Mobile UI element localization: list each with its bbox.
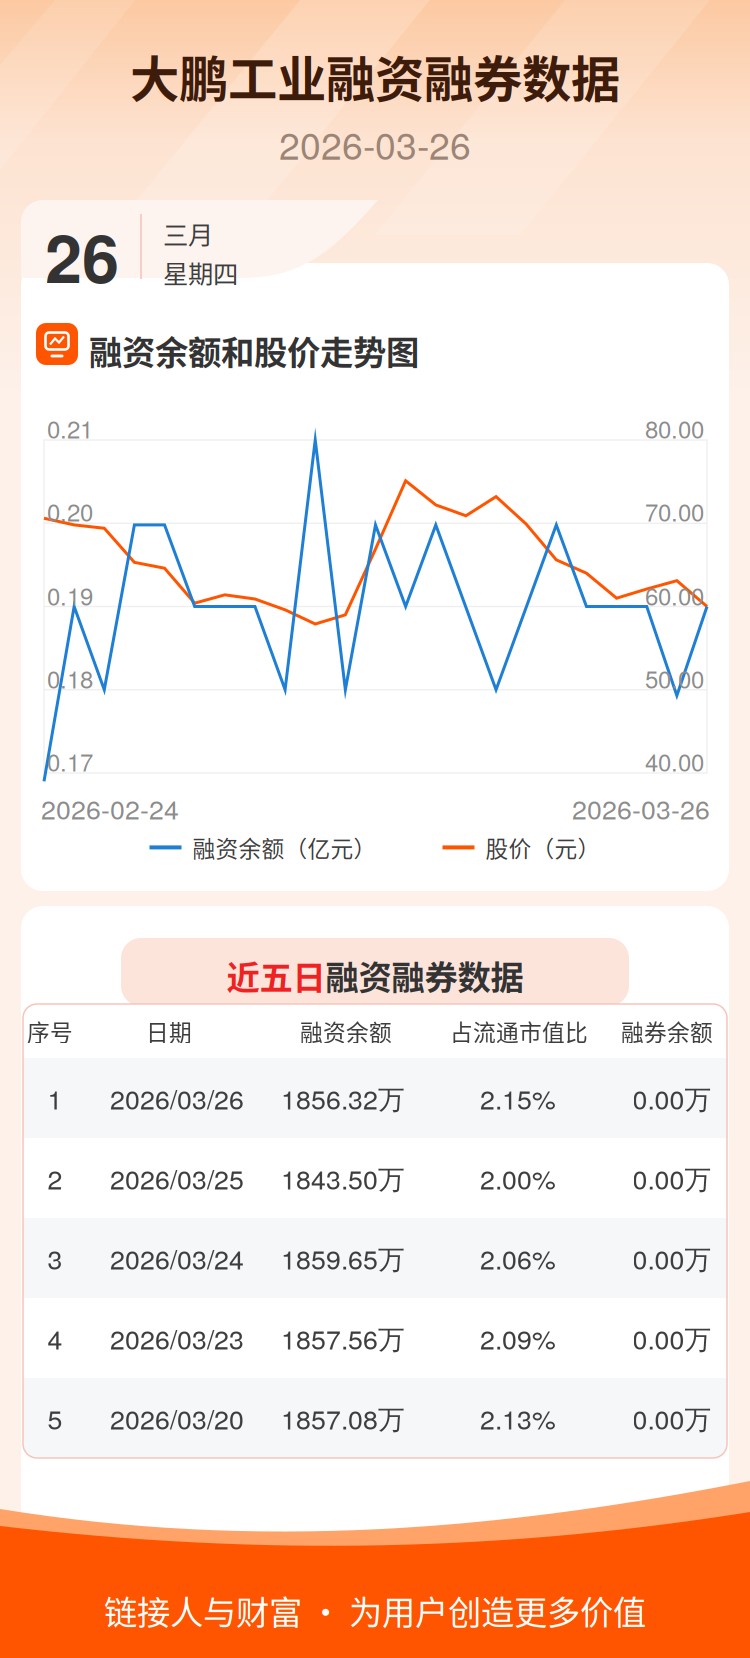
staticText: 2026/03/20: [110, 1399, 244, 1437]
staticText: 1857.08万: [281, 1399, 405, 1437]
staticText: 2026-03-26: [572, 789, 710, 827]
staticText: 0.18: [47, 661, 93, 695]
staticText: 0.00万: [632, 1399, 711, 1437]
staticText: 0.00万: [632, 1079, 711, 1117]
staticText: 日期: [146, 1015, 192, 1047]
staticText: 1859.65万: [281, 1239, 405, 1277]
staticText: 融资余额: [300, 1015, 392, 1047]
staticText: 0.17: [47, 744, 93, 778]
staticText: 2026/03/25: [110, 1159, 244, 1197]
staticText: 2: [47, 1159, 62, 1197]
staticText: 股价（元）: [485, 831, 600, 864]
staticText: 2026-03-26: [279, 117, 471, 170]
staticText: 2026-02-24: [41, 789, 179, 827]
staticText: 融资余额和股价走势图: [89, 326, 419, 374]
staticText: 2026/03/23: [110, 1319, 244, 1357]
staticText: 近五日: [226, 951, 325, 999]
staticText: 0.00万: [632, 1319, 711, 1357]
staticText: 1: [47, 1079, 62, 1117]
staticText: 5: [47, 1399, 62, 1437]
staticText: 三月: [163, 215, 213, 252]
staticText: 大鹏工业融资融券数据: [130, 40, 620, 111]
staticText: 1843.50万: [281, 1159, 405, 1197]
staticText: 2.00%: [480, 1159, 556, 1197]
staticText: 0.19: [47, 578, 93, 612]
staticText: 60.00: [645, 578, 704, 612]
staticText: 50.00: [645, 661, 704, 695]
staticText: 融券余额: [621, 1015, 713, 1047]
staticText: 2026/03/24: [110, 1239, 244, 1277]
staticText: 序号: [27, 1015, 73, 1047]
staticText: 2.09%: [480, 1319, 556, 1357]
staticText: 0.21: [47, 411, 93, 445]
staticText: 80.00: [645, 411, 704, 445]
staticText: 40.00: [645, 744, 704, 778]
staticText: 1856.32万: [281, 1079, 405, 1117]
staticText: 0.20: [47, 494, 93, 528]
staticText: 2.06%: [480, 1239, 556, 1277]
staticText: 融资融券数据: [325, 951, 523, 999]
staticText: 4: [47, 1319, 62, 1357]
staticText: 26: [45, 208, 119, 303]
staticText: 星期四: [163, 254, 238, 291]
staticText: 2.15%: [480, 1079, 556, 1117]
staticText: 1857.56万: [281, 1319, 405, 1357]
staticText: 2026/03/26: [110, 1079, 244, 1117]
staticText: 链接人与财富 · 为用户创造更多价值: [104, 1586, 646, 1634]
staticText: 70.00: [645, 494, 704, 528]
staticText: 融资余额（亿元）: [192, 831, 376, 864]
staticText: 占流通市值比: [450, 1015, 588, 1047]
staticText: 3: [47, 1239, 62, 1277]
staticText: 2.13%: [480, 1399, 556, 1437]
staticText: 0.00万: [632, 1239, 711, 1277]
staticText: 0.00万: [632, 1159, 711, 1197]
